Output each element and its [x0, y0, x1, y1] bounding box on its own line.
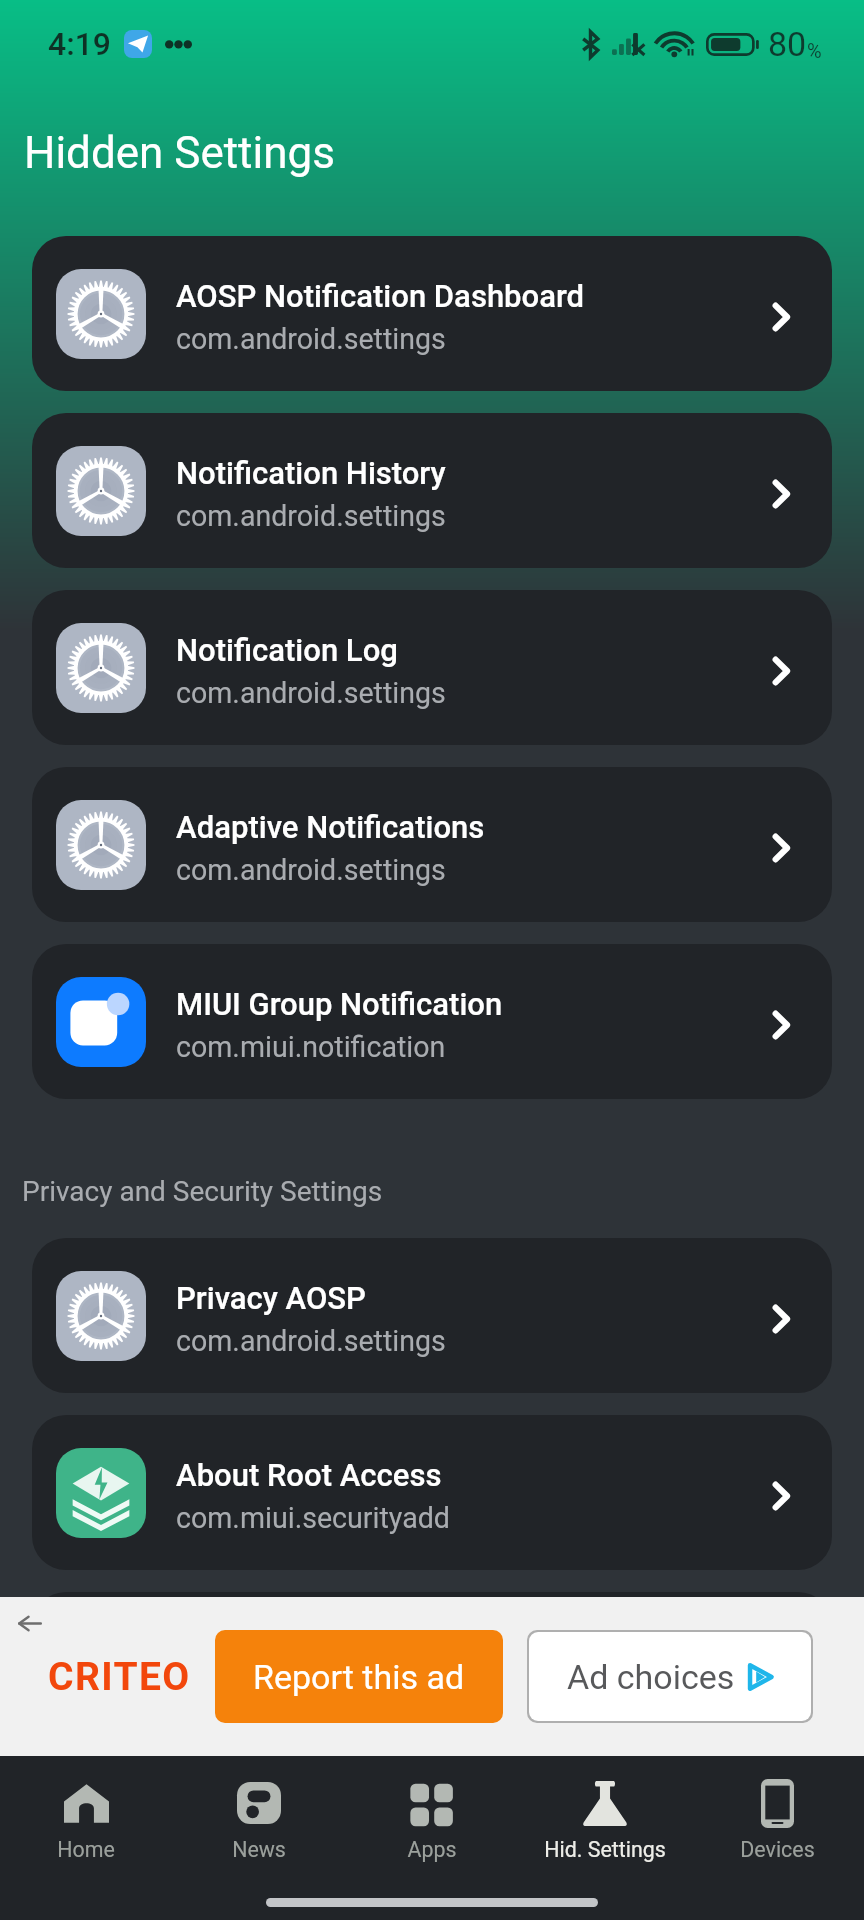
button[interactable]: MIUI Group Notification	[32, 944, 832, 1099]
staticText: AOSP Notification Dashboard	[176, 278, 585, 314]
button[interactable]: Apps	[345, 1778, 518, 1862]
staticText: Home	[57, 1837, 115, 1862]
staticText: com.android.settings	[176, 676, 446, 710]
button[interactable]: Privacy AOSP	[32, 1238, 832, 1393]
staticText: MIUI Group Notification	[176, 986, 503, 1022]
staticText: About Root Access	[176, 1457, 442, 1493]
button[interactable]: News	[172, 1778, 345, 1862]
button[interactable]: Close ad	[4, 1597, 56, 1649]
staticText: CRITEO	[48, 1654, 191, 1700]
button[interactable]: Security Settings	[32, 1592, 832, 1747]
staticText: com.android.settings	[176, 499, 446, 533]
button[interactable]: Ad choices	[529, 1632, 811, 1721]
staticText: Ad choices	[567, 1657, 735, 1697]
button[interactable]: About Root Access	[32, 1415, 832, 1570]
staticText: Devices	[740, 1837, 815, 1862]
staticText: Hid. Settings	[544, 1837, 666, 1862]
staticText: com.android.settings	[176, 322, 446, 356]
button[interactable]: Home	[0, 1778, 172, 1862]
other: No SIM	[612, 33, 648, 55]
staticText: com.android.settings	[176, 853, 446, 887]
staticText: Apps	[407, 1837, 457, 1862]
button[interactable]: Adaptive Notifications	[32, 767, 832, 922]
other: Battery	[706, 33, 761, 56]
staticText: Notification History	[176, 455, 446, 491]
staticText: Notification Log	[176, 632, 398, 668]
staticText: Security Settings	[176, 1634, 412, 1670]
staticText: News	[232, 1837, 286, 1862]
other: Wi-Fi	[658, 32, 695, 57]
staticText: Privacy and Security Settings	[22, 1175, 383, 1208]
button[interactable]: Report this ad	[215, 1630, 503, 1723]
button[interactable]: Notification Log	[32, 590, 832, 745]
other: Bluetooth	[582, 31, 599, 58]
staticText: com.miui.securitycenter	[176, 1678, 483, 1712]
staticText: 80	[768, 24, 807, 64]
staticText: 4:19	[48, 25, 112, 63]
staticText: Privacy AOSP	[176, 1280, 366, 1316]
staticText: Adaptive Notifications	[176, 809, 485, 845]
staticText: Hidden Settings	[24, 127, 335, 179]
staticText: Report this ad	[253, 1657, 465, 1697]
staticText: com.miui.securityadd	[176, 1501, 450, 1535]
button[interactable]: Hid. Settings	[518, 1778, 691, 1862]
button[interactable]: AOSP Notification Dashboard	[32, 236, 832, 391]
button[interactable]: Notification History	[32, 413, 832, 568]
staticText: com.miui.notification	[176, 1030, 446, 1064]
staticText: %	[807, 39, 822, 62]
staticText: com.android.settings	[176, 1324, 446, 1358]
button[interactable]: Devices	[691, 1778, 864, 1862]
